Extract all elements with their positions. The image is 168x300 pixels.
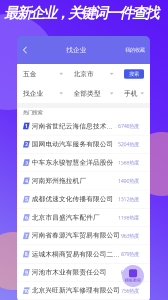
staticText: 热门搜索 — [23, 109, 42, 116]
button[interactable]: 北京市 — [73, 68, 113, 79]
button[interactable]: 7 — [17, 227, 150, 245]
button[interactable]: 6 — [17, 208, 150, 227]
staticText: 手机 — [124, 89, 138, 98]
staticText: 河池市木业有限责任公司 — [32, 268, 107, 276]
staticText: 全部类型 — [73, 89, 101, 98]
button[interactable]: 1 — [17, 117, 150, 135]
button[interactable]: 我的收藏 — [120, 42, 150, 58]
staticText: 6746热度 — [118, 122, 139, 129]
staticText: 6 — [25, 214, 28, 221]
staticText: 找企业 — [23, 89, 44, 98]
staticText: 963热度 — [121, 232, 139, 239]
button[interactable]: 8 — [17, 245, 150, 263]
staticText: 最新企业，关键词一件查找 — [4, 4, 160, 22]
staticText: 1588热度 — [118, 159, 139, 166]
button[interactable]: 2 — [17, 135, 150, 154]
staticText: 中车东永骏智慧全洋品股份 — [32, 158, 114, 167]
staticText: 1198热度 — [118, 214, 139, 221]
staticText: 10 — [23, 287, 29, 294]
staticText: 成都优速文化传播有限公司 — [32, 195, 114, 203]
staticText: 3 — [25, 159, 28, 166]
staticText: 找企业 — [66, 46, 87, 54]
button[interactable]: 全部类型 — [73, 88, 113, 99]
staticText: 9 — [25, 269, 28, 276]
button[interactable]: 模板教程 — [122, 265, 144, 287]
button[interactable]: 找企业 — [23, 88, 63, 99]
staticText: 北京市 — [73, 70, 94, 78]
button[interactable]: 3 — [17, 154, 150, 172]
staticText: 810热度 — [121, 269, 139, 276]
staticText: 1 — [25, 122, 28, 129]
staticText: 4 — [25, 177, 28, 184]
staticText: 756热度 — [121, 287, 139, 294]
staticText: 河南省春源汽车贸易有限公司 — [32, 231, 120, 240]
staticText: 北京市昌盛汽车配件厂 — [32, 213, 100, 222]
button[interactable]: 9 — [17, 263, 150, 282]
staticText: 国网电动汽车服务有限公司 — [32, 140, 114, 148]
staticText: 模板教程 — [125, 278, 141, 283]
staticText: 879热度 — [121, 250, 139, 258]
staticText: 1490热度 — [118, 177, 139, 184]
staticText: 搜索 — [129, 71, 139, 77]
button[interactable]: 4 — [17, 172, 150, 190]
staticText: 北京兴旺新汽车修理有限公司 — [32, 286, 120, 295]
staticText: 8 — [25, 250, 28, 258]
staticText: 我的收藏 — [125, 47, 145, 53]
staticText: 5204热度 — [118, 141, 139, 148]
button[interactable]: 手机 — [124, 88, 144, 99]
staticText: 2 — [25, 141, 28, 148]
staticText: 5 — [25, 196, 28, 203]
staticText: 河南郑州拖拉机厂 — [32, 177, 86, 185]
staticText: 五金 — [23, 70, 37, 78]
button[interactable]: 10 — [17, 282, 150, 300]
button[interactable]: Back — [17, 42, 33, 58]
button[interactable]: 搜索 — [124, 69, 144, 79]
button[interactable]: 五金 — [23, 68, 63, 79]
button[interactable]: 5 — [17, 190, 150, 208]
staticText: 7 — [25, 232, 28, 239]
staticText: 运城木桐商贸易有限公司二汽配 — [32, 250, 120, 258]
staticText: 河南省世纪云海信息技术有限公司 — [32, 121, 117, 130]
staticText: 1312热度 — [118, 196, 139, 203]
